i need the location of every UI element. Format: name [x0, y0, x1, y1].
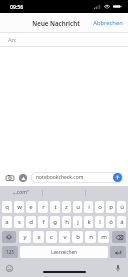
button[interactable]: z [62, 201, 71, 213]
button[interactable]: Diktat [113, 263, 123, 273]
staticText: d [29, 218, 33, 226]
staticText: x [37, 233, 41, 241]
staticText: y [23, 233, 27, 241]
staticText: An: [8, 36, 17, 44]
staticText: f [42, 218, 45, 226]
staticText: n [89, 233, 93, 241]
button[interactable]: x [33, 231, 44, 243]
button[interactable]: Emoji [4, 263, 14, 273]
button[interactable]: „.com“ [0, 186, 42, 199]
staticText: e [29, 203, 33, 211]
staticText: s [18, 218, 21, 226]
staticText: „.com“ [13, 189, 29, 196]
button[interactable]: t [50, 201, 60, 213]
button[interactable]: i [84, 201, 93, 213]
staticText: a [5, 218, 9, 226]
button[interactable]: Eingabe [110, 246, 126, 258]
staticText: ö [109, 218, 113, 226]
button[interactable]: m [98, 231, 109, 243]
button[interactable]: g [50, 216, 60, 228]
staticText: ä [120, 218, 124, 226]
staticText: g [53, 218, 57, 226]
button[interactable]: s [14, 216, 24, 228]
button[interactable]: b [72, 231, 83, 243]
staticText: r [42, 203, 45, 211]
button[interactable]: d [26, 216, 36, 228]
button[interactable]: k [84, 216, 93, 228]
staticText: k [87, 218, 91, 226]
button[interactable]: An: [0, 33, 128, 46]
button[interactable]: notebookcheck.com [31, 172, 123, 183]
button[interactable]: p [106, 201, 115, 213]
button[interactable]: Senden [113, 173, 122, 182]
button[interactable]: r [38, 201, 48, 213]
staticText: v [63, 233, 67, 241]
button[interactable]: j [73, 216, 82, 228]
staticText: o [98, 203, 102, 211]
staticText: p [109, 203, 113, 211]
button[interactable]: l [95, 216, 104, 228]
button[interactable]: f [38, 216, 48, 228]
button[interactable]: h [62, 216, 71, 228]
button[interactable]: c [46, 231, 57, 243]
staticText: c [50, 233, 53, 241]
staticText: z [65, 203, 68, 211]
button[interactable]: y [19, 231, 31, 243]
button[interactable]: n [85, 231, 96, 243]
button[interactable]: q [2, 201, 12, 213]
staticText: i [88, 203, 90, 211]
staticText: notebookcheck.com [36, 174, 84, 181]
button[interactable]: ö [106, 216, 115, 228]
staticText: u [76, 203, 80, 211]
button[interactable]: u [73, 201, 82, 213]
staticText: h [65, 218, 69, 226]
button[interactable]: Leerzeichen [20, 246, 108, 258]
staticText: 09:56 [10, 3, 24, 10]
button[interactable]: Kamera [4, 172, 16, 184]
staticText: 123 [6, 249, 14, 255]
staticText: ü [120, 203, 124, 211]
button[interactable]: App Store [17, 172, 29, 184]
staticText: Abbrechen [93, 19, 123, 27]
staticText: l [99, 218, 101, 226]
button[interactable]: a [2, 216, 12, 228]
staticText: w [17, 203, 22, 211]
button[interactable]: Abbrechen [88, 15, 128, 31]
button[interactable]: o [95, 201, 104, 213]
staticText: t [54, 203, 57, 211]
button[interactable]: w [14, 201, 24, 213]
staticText: j [77, 218, 79, 226]
staticText: b [76, 233, 80, 241]
button[interactable]: e [26, 201, 36, 213]
button[interactable]: 123 [2, 246, 18, 258]
button[interactable]: v [59, 231, 70, 243]
button[interactable]: Löschen [112, 231, 126, 243]
button[interactable]: ä [117, 216, 126, 228]
button[interactable]: ü [117, 201, 126, 213]
staticText: q [5, 203, 9, 211]
staticText: Leerzeichen [51, 249, 77, 255]
staticText: Neue Nachricht [32, 19, 80, 27]
button[interactable]: Umschalt [2, 231, 16, 243]
staticText: m [101, 233, 107, 241]
